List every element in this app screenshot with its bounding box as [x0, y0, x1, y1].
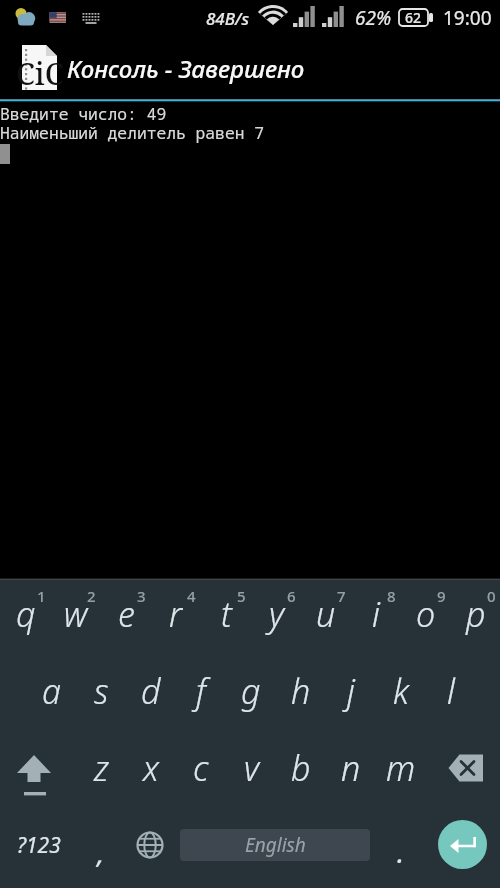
button[interactable]: d: [125, 657, 175, 734]
staticText: x: [143, 745, 159, 791]
button[interactable]: j: [325, 657, 375, 734]
button[interactable]: i: [350, 580, 400, 657]
button[interactable]: Enter: [438, 820, 487, 869]
button[interactable]: k: [375, 657, 425, 734]
staticText: b: [291, 745, 311, 791]
staticText: ,: [97, 833, 105, 871]
button[interactable]: u: [300, 580, 350, 657]
staticText: 9: [437, 586, 446, 606]
button[interactable]: ,: [76, 811, 124, 888]
staticText: 7: [337, 586, 346, 606]
staticText: n: [341, 745, 361, 791]
staticText: h: [291, 668, 311, 714]
staticText: English: [245, 832, 306, 858]
staticText: Консоль - Завершено: [67, 52, 305, 85]
staticText: a: [42, 668, 61, 714]
staticText: j: [347, 668, 355, 714]
staticText: g: [241, 668, 261, 714]
button[interactable]: English: [180, 829, 370, 861]
button[interactable]: s: [75, 657, 125, 734]
staticText: l: [447, 668, 455, 714]
staticText: k: [393, 668, 409, 714]
button[interactable]: v: [225, 734, 275, 811]
staticText: e: [118, 591, 135, 637]
staticText: t: [221, 591, 232, 637]
button[interactable]: ?123: [0, 811, 76, 888]
staticText: .: [397, 833, 405, 871]
staticText: 5: [237, 586, 246, 606]
staticText: 62%: [355, 5, 392, 31]
button[interactable]: w: [50, 580, 100, 657]
button[interactable]: l: [425, 657, 475, 734]
button[interactable]: o: [400, 580, 450, 657]
staticText: y: [269, 591, 284, 637]
staticText: o: [416, 591, 436, 637]
button[interactable]: t: [200, 580, 250, 657]
staticText: 19:00: [443, 5, 492, 31]
staticText: c: [193, 745, 209, 791]
staticText: s: [94, 668, 109, 714]
staticText: q: [16, 591, 36, 637]
staticText: 62: [405, 8, 422, 27]
staticText: 2: [87, 586, 96, 606]
staticText: Введите число: 49: [0, 103, 167, 125]
button[interactable]: h: [275, 657, 325, 734]
staticText: 6: [287, 586, 296, 606]
staticText: p: [466, 591, 486, 637]
button[interactable]: e: [100, 580, 150, 657]
button[interactable]: m: [375, 734, 425, 811]
button[interactable]: r: [150, 580, 200, 657]
staticText: d: [141, 668, 161, 714]
button[interactable]: q: [0, 580, 50, 657]
staticText: m: [386, 745, 416, 791]
button[interactable]: a: [25, 657, 75, 734]
button[interactable]: z: [75, 734, 125, 811]
button[interactable]: Change language: [124, 811, 175, 888]
staticText: v: [244, 745, 259, 791]
staticText: ?123: [17, 831, 61, 860]
button[interactable]: p: [450, 580, 500, 657]
button[interactable]: y: [250, 580, 300, 657]
button[interactable]: c: [175, 734, 225, 811]
staticText: 4: [187, 586, 196, 606]
staticText: 8: [387, 586, 396, 606]
staticText: 1: [37, 586, 46, 606]
staticText: r: [169, 591, 183, 637]
staticText: CiC: [16, 53, 64, 94]
staticText: f: [196, 668, 206, 714]
button[interactable]: f: [175, 657, 225, 734]
staticText: z: [94, 745, 109, 791]
button[interactable]: b: [275, 734, 325, 811]
staticText: 3: [137, 586, 146, 606]
button[interactable]: Shift: [0, 734, 75, 811]
button[interactable]: .: [375, 811, 423, 888]
staticText: u: [316, 591, 336, 637]
button[interactable]: n: [325, 734, 375, 811]
staticText: w: [64, 591, 88, 637]
button[interactable]: x: [125, 734, 175, 811]
staticText: 0: [487, 586, 496, 606]
button[interactable]: Backspace: [425, 734, 500, 811]
button[interactable]: g: [225, 657, 275, 734]
staticText: Наименьший делитель равен 7: [0, 122, 265, 144]
staticText: i: [372, 591, 380, 637]
staticText: 84B/s: [206, 7, 249, 30]
